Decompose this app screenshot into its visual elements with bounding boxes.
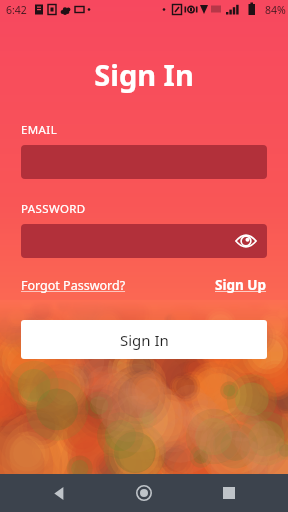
staticText: Sign In [120,330,169,350]
staticText: Sign In [0,55,288,94]
staticText: EMAIL [21,122,58,138]
button[interactable]: Back [44,478,74,508]
staticText: Forgot Password? [21,277,126,294]
staticText: 6:42 [6,3,27,17]
staticText: 84% [265,3,286,17]
button[interactable]: Home [129,478,159,508]
button[interactable]: Sign Up [215,276,267,294]
button[interactable]: Forgot Password? [21,277,126,294]
button[interactable]: Sign In [21,320,267,359]
staticText: PASSWORD [21,201,86,217]
staticText: Sign Up [215,276,267,294]
button[interactable]: Recent apps [214,478,244,508]
button[interactable]: Show password [231,226,261,256]
